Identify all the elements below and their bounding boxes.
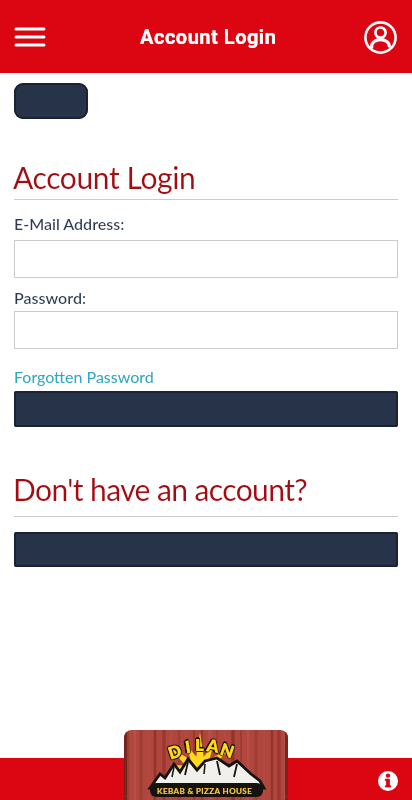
staticText: A: [206, 734, 222, 756]
button[interactable]: [14, 240, 398, 278]
button[interactable]: D: [124, 730, 288, 800]
staticText: Don't have an account?: [13, 471, 308, 507]
staticText: D: [164, 739, 183, 762]
button[interactable]: [378, 771, 398, 791]
staticText: A: [205, 735, 221, 757]
staticText: L: [195, 732, 204, 752]
staticText: D: [166, 739, 185, 762]
staticText: I: [183, 735, 193, 755]
staticText: N: [219, 737, 239, 761]
staticText: Password:: [14, 288, 86, 307]
staticText: Account Login: [140, 25, 277, 48]
staticText: N: [217, 737, 237, 761]
staticText: L: [196, 734, 205, 754]
staticText: Account Login: [13, 159, 196, 195]
staticText: L: [194, 734, 203, 754]
staticText: A: [205, 733, 221, 755]
staticText: L: [195, 734, 204, 754]
staticText: D: [165, 738, 184, 761]
staticText: N: [218, 739, 238, 763]
staticText: L: [194, 734, 203, 754]
button[interactable]: [8, 15, 52, 59]
staticText: D: [166, 740, 185, 763]
staticText: D: [165, 740, 184, 763]
staticText: I: [183, 734, 193, 754]
staticText: D: [164, 738, 183, 761]
staticText: D: [166, 738, 185, 761]
staticText: L: [196, 733, 205, 753]
staticText: N: [219, 738, 239, 762]
button[interactable]: [14, 311, 398, 349]
staticText: A: [205, 734, 221, 756]
staticText: E-Mail Address:: [14, 214, 125, 233]
button[interactable]: [360, 17, 400, 57]
staticText: A: [204, 733, 220, 755]
staticText: I: [184, 736, 194, 756]
staticText: A: [205, 735, 221, 757]
staticText: I: [183, 737, 193, 757]
button[interactable]: [14, 532, 398, 567]
staticText: KEBAB & PIZZA HOUSE: [157, 786, 253, 796]
staticText: A: [203, 734, 219, 756]
staticText: D: [164, 740, 183, 763]
staticText: N: [218, 736, 238, 760]
staticText: L: [194, 733, 203, 753]
staticText: I: [183, 736, 193, 756]
staticText: A: [205, 733, 221, 755]
staticText: I: [182, 736, 192, 756]
staticText: I: [182, 735, 192, 755]
button[interactable]: Forgotten Password: [14, 367, 154, 386]
staticText: A: [204, 735, 220, 757]
button[interactable]: [14, 391, 398, 427]
button[interactable]: [14, 83, 88, 119]
staticText: L: [195, 735, 204, 755]
staticText: D: [165, 739, 184, 762]
staticText: N: [217, 738, 237, 762]
staticText: N: [218, 738, 238, 762]
staticText: N: [219, 738, 239, 762]
staticText: I: [183, 736, 193, 756]
staticText: N: [217, 738, 237, 762]
staticText: L: [196, 734, 205, 754]
staticText: I: [181, 736, 191, 756]
